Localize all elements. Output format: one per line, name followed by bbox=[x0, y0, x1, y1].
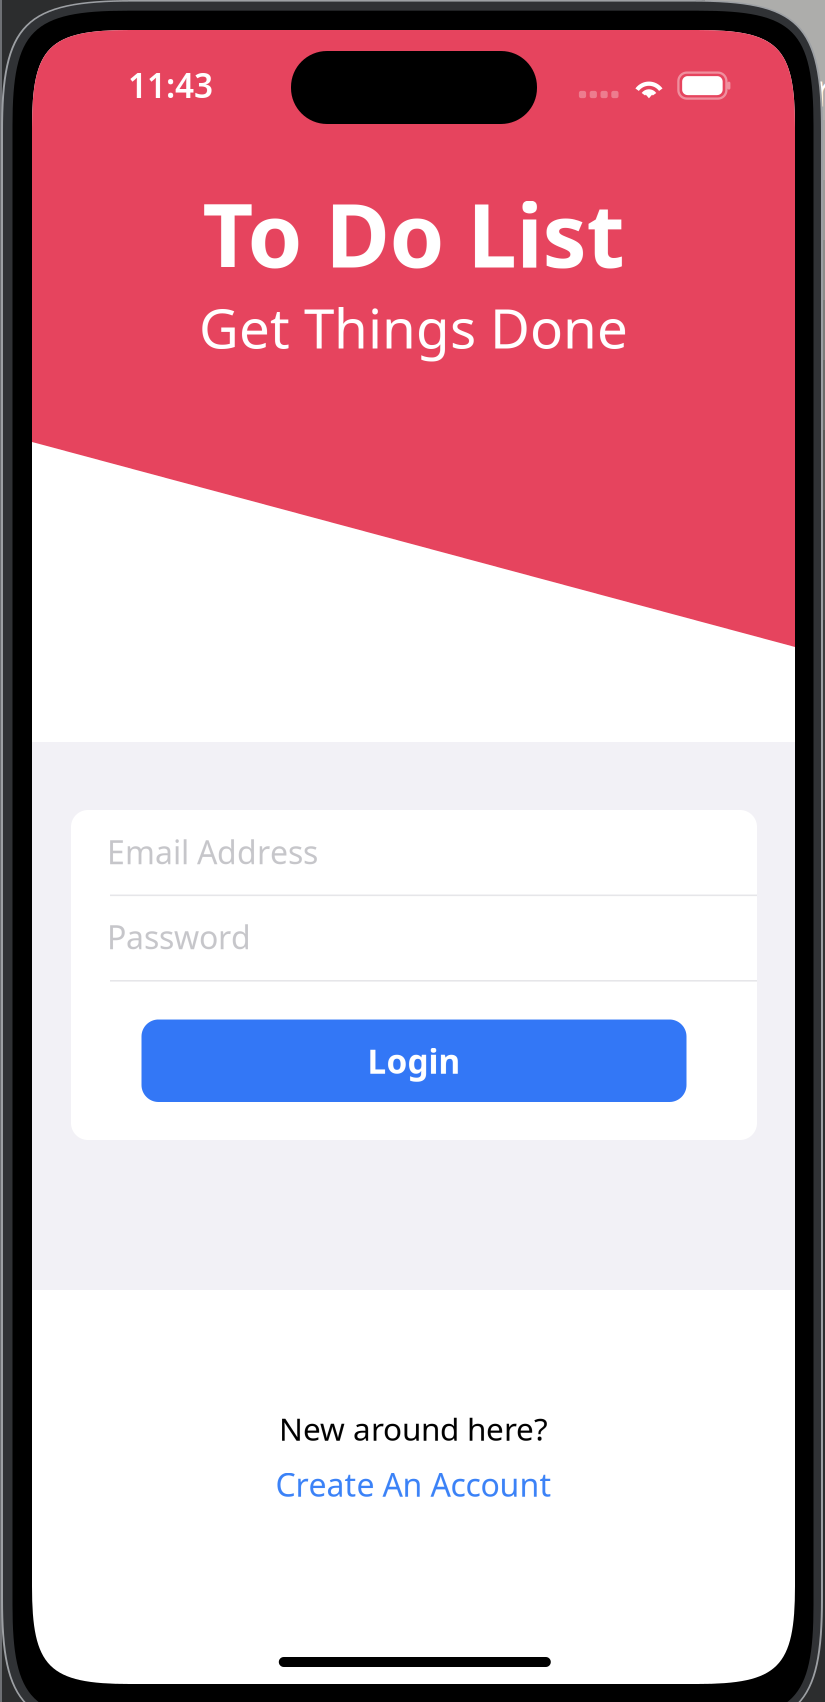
staticText: Create An Account bbox=[275, 1463, 551, 1505]
staticText: cree bbox=[793, 58, 825, 120]
staticText: Get Things Done bbox=[199, 291, 628, 364]
staticText: Login bbox=[367, 1039, 460, 1083]
staticText: New around here? bbox=[279, 1407, 548, 1450]
button[interactable]: Login bbox=[141, 1019, 686, 1102]
staticText: Password bbox=[107, 915, 251, 958]
staticText: To Do List bbox=[202, 175, 624, 292]
staticText: Email Address bbox=[107, 830, 318, 873]
staticText: 11:43 bbox=[128, 63, 213, 107]
button[interactable]: Create An Account bbox=[32, 1463, 795, 1505]
